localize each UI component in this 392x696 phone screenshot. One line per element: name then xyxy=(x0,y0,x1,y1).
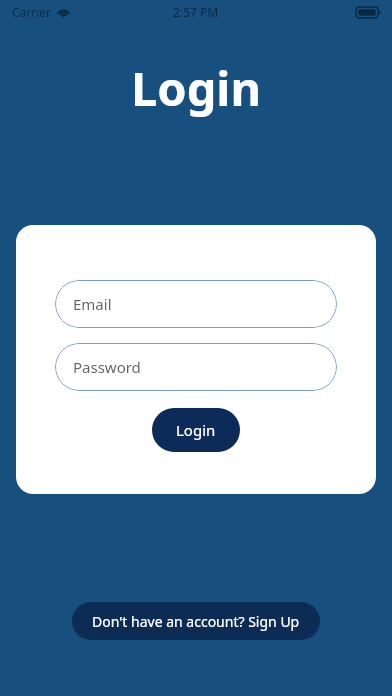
staticText: Carrier xyxy=(12,4,52,20)
staticText: Password xyxy=(73,357,141,377)
staticText: Don't have an account? Sign Up xyxy=(92,612,300,631)
button[interactable]: Password xyxy=(55,343,337,391)
staticText: Login xyxy=(176,420,216,440)
staticText: 2:57 PM xyxy=(173,4,219,20)
staticText: Email xyxy=(73,294,112,314)
button[interactable]: Login xyxy=(152,408,240,452)
button[interactable]: Don't have an account? Sign Up xyxy=(72,602,320,640)
button[interactable]: Email xyxy=(55,280,337,328)
staticText: Login xyxy=(0,56,392,120)
